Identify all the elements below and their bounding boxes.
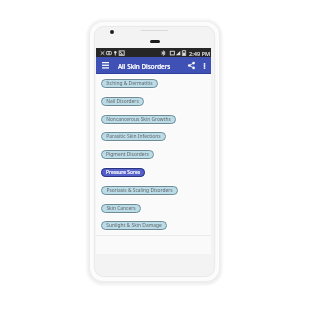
staticText: 2:49 PM <box>189 50 211 58</box>
button[interactable]: Itching & Dermatitis <box>100 78 159 89</box>
button[interactable]: Noncancerous Skin Growths <box>100 114 177 125</box>
button[interactable]: More options <box>199 57 209 74</box>
staticText: Nail Disorders <box>106 98 139 105</box>
staticText: Sunlight & Skin Damage <box>106 222 162 229</box>
button[interactable]: Pressure Sores <box>100 167 146 178</box>
button[interactable]: Share <box>185 57 197 74</box>
button[interactable]: Psoriasis & Scaling Disorders <box>100 185 179 196</box>
staticText: Parasitic Skin Infections <box>106 133 161 140</box>
staticText: All Skin Disorders <box>118 62 171 71</box>
button[interactable]: Nail Disorders <box>100 96 145 107</box>
staticText: Pigment Disorders <box>106 151 149 158</box>
button[interactable]: Parasitic Skin Infections <box>100 131 167 142</box>
button[interactable]: Open navigation drawer <box>98 57 113 74</box>
staticText: Skin Cancers <box>106 205 136 212</box>
staticText: Pressure Sores <box>106 169 140 176</box>
staticText: Noncancerous Skin Growths <box>106 116 171 123</box>
button[interactable]: Skin Cancers <box>100 203 142 214</box>
staticText: Psoriasis & Scaling Disorders <box>106 187 173 194</box>
staticText: Itching & Dermatitis <box>106 80 153 87</box>
button[interactable]: Sunlight & Skin Damage <box>100 220 168 231</box>
button[interactable]: Pigment Disorders <box>100 149 155 160</box>
